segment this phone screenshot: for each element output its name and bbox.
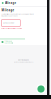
staticText: Mileage	[5, 1, 17, 5]
button[interactable]: Add trip	[37, 85, 45, 93]
staticText: Log the miles you drive for work and we …	[1, 13, 33, 17]
staticText: Start tracking to see them here	[13, 61, 33, 63]
staticText: Trip saved successfully	[4, 40, 13, 44]
staticText: Mileage	[1, 8, 14, 12]
staticText: Enter a valid odometer reading	[1, 28, 22, 29]
staticText: Starting odometer	[3, 22, 15, 24]
staticText: No trips logged	[18, 59, 29, 61]
